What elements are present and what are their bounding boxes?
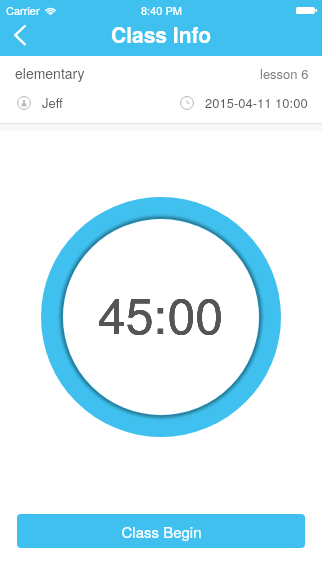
staticText: 45:00 <box>98 277 224 349</box>
button[interactable]: Back <box>0 20 40 56</box>
staticText: lesson 6 <box>260 64 309 83</box>
staticText: Carrier <box>6 2 40 18</box>
staticText: 45:00 <box>98 277 224 349</box>
staticText: elementary <box>15 63 85 83</box>
staticText: 2015-04-11 10:00 <box>205 93 308 112</box>
staticText: Class Info <box>111 19 212 49</box>
staticText: 45:00 <box>98 277 224 349</box>
staticText: Class Begin <box>121 521 202 542</box>
staticText: Jeff <box>42 93 63 112</box>
staticText: 8:40 PM <box>141 2 182 18</box>
staticText: 45:00 <box>98 277 224 349</box>
staticText: 45:00 <box>98 277 224 349</box>
button[interactable]: Class Begin <box>17 514 305 548</box>
